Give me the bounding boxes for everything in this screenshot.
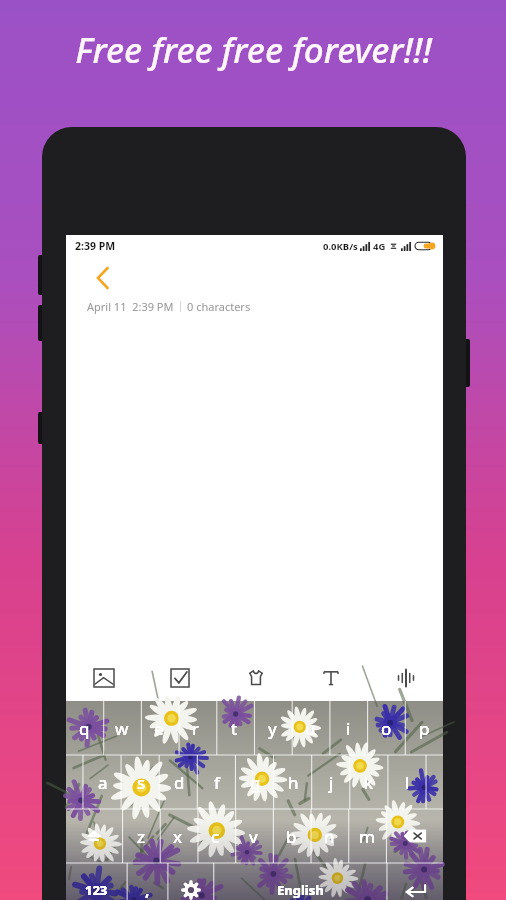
button[interactable]: Shift [66,809,122,863]
staticText: h [288,771,299,794]
button[interactable]: Text format [293,655,368,701]
button[interactable]: i [329,701,367,755]
button[interactable]: m [348,809,386,863]
staticText: English [277,881,324,899]
staticText: w [115,717,129,740]
button[interactable]: Enter [387,863,443,900]
button[interactable]: a [84,755,122,809]
button[interactable]: h [274,755,312,809]
staticText: c [211,825,220,848]
button[interactable]: English [214,863,387,900]
button[interactable]: Keyboard settings [168,863,214,900]
staticText: i [346,717,351,740]
button[interactable]: o [367,701,405,755]
button[interactable]: , [127,863,168,900]
button[interactable]: p [405,701,443,755]
button[interactable]: Shift [66,809,122,863]
staticText: q [79,717,90,740]
button[interactable]: g [236,755,274,809]
button[interactable]: z [122,809,159,863]
button[interactable]: g [236,755,274,809]
button[interactable]: v [234,809,272,863]
staticText: f [214,771,220,794]
button[interactable]: l [388,755,426,809]
button[interactable]: d [160,755,198,809]
staticText: Free free free forever!!! [75,26,432,74]
button[interactable]: u [291,701,329,755]
staticText: r [192,717,200,740]
button[interactable]: z [122,809,159,863]
button[interactable]: , [127,863,168,900]
button[interactable]: Voice note [368,655,443,701]
staticText: e [154,717,164,740]
staticText: w [115,717,129,740]
button[interactable]: j [312,755,350,809]
staticText: h [288,771,299,794]
button[interactable]: 123 [66,863,127,900]
button[interactable]: m [348,809,386,863]
button[interactable]: k [350,755,388,809]
button[interactable]: f [198,755,236,809]
button[interactable]: Keyboard settings [168,863,214,900]
button[interactable]: b [272,809,310,863]
staticText: u [305,717,316,740]
button[interactable]: Enter [387,863,443,900]
button[interactable]: w [103,701,140,755]
button[interactable]: q [66,701,103,755]
button[interactable]: Theme [218,655,293,701]
button[interactable]: c [196,809,234,863]
staticText: e [154,717,164,740]
staticText: April 11 2:39 PM [87,299,174,314]
button[interactable]: u [291,701,329,755]
staticText: g [250,771,261,794]
staticText: a [98,771,108,794]
staticText: b [286,825,297,848]
button[interactable]: p [405,701,443,755]
staticText: g [250,771,261,794]
button[interactable]: c [196,809,234,863]
button[interactable]: k [350,755,388,809]
button[interactable]: l [388,755,426,809]
staticText: 0.0KB/s [323,240,358,253]
staticText: i [346,717,351,740]
button[interactable]: Back [88,263,118,293]
button[interactable]: q [66,701,103,755]
button[interactable]: r [177,701,215,755]
button[interactable]: w [103,701,140,755]
button[interactable]: o [367,701,405,755]
button[interactable]: v [234,809,272,863]
button[interactable]: Checklist [142,655,218,701]
button[interactable]: j [312,755,350,809]
staticText: v [249,825,258,848]
button[interactable]: Backspace [386,809,443,863]
button[interactable]: t [215,701,253,755]
staticText: m [359,825,375,848]
button[interactable]: s [122,755,160,809]
staticText: b [286,825,297,848]
button[interactable]: y [253,701,291,755]
button[interactable]: e [140,701,177,755]
button[interactable]: b [272,809,310,863]
button[interactable]: x [159,809,196,863]
button[interactable]: i [329,701,367,755]
button[interactable]: 123 [66,863,127,900]
button[interactable]: d [160,755,198,809]
button[interactable]: Backspace [386,809,443,863]
button[interactable]: h [274,755,312,809]
button[interactable]: n [310,809,348,863]
button[interactable]: r [177,701,215,755]
staticText: y [268,717,277,740]
button[interactable]: y [253,701,291,755]
button[interactable]: x [159,809,196,863]
staticText: f [214,771,220,794]
button[interactable]: n [310,809,348,863]
button[interactable]: a [84,755,122,809]
button[interactable]: f [198,755,236,809]
button[interactable]: e [140,701,177,755]
button[interactable]: Insert image [66,655,142,701]
button[interactable]: t [215,701,253,755]
button[interactable]: s [122,755,160,809]
staticText: x [173,825,182,848]
staticText: o [381,717,392,740]
button[interactable]: English [214,863,387,900]
